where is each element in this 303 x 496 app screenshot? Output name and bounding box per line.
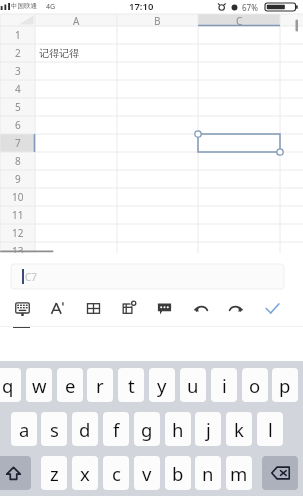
button[interactable]: o — [242, 368, 268, 402]
button[interactable]: Undo — [183, 291, 217, 326]
button[interactable]: t — [118, 368, 144, 402]
button[interactable]: Text format — [40, 291, 74, 326]
staticText: n — [202, 461, 214, 486]
staticText: 8 — [15, 154, 21, 168]
staticText: 中国联通 — [11, 2, 37, 10]
staticText: y — [157, 373, 167, 398]
staticText: m — [230, 461, 248, 486]
button[interactable]: v — [134, 456, 160, 490]
staticText: 17:10 — [129, 0, 154, 13]
button[interactable]: f — [103, 412, 129, 446]
button[interactable]: b — [165, 456, 191, 490]
button[interactable]: e — [57, 368, 83, 402]
button[interactable]: i — [211, 368, 237, 402]
staticText: 1 — [15, 28, 21, 42]
staticText: 2 — [15, 46, 21, 60]
staticText: 13 — [12, 244, 24, 258]
staticText: B — [154, 14, 161, 26]
staticText: c — [112, 461, 121, 486]
staticText: 6 — [15, 118, 21, 132]
staticText: 3 — [15, 64, 21, 78]
button[interactable]: Table — [76, 291, 110, 326]
staticText: C — [236, 14, 243, 26]
button[interactable]: k — [226, 412, 252, 446]
staticText: 12 — [12, 226, 24, 240]
staticText: 9 — [15, 172, 21, 186]
staticText: k — [234, 417, 244, 442]
staticText: s — [50, 417, 59, 442]
staticText: 7 — [15, 136, 21, 150]
staticText: 4 — [15, 82, 21, 96]
button[interactable]: g — [134, 412, 160, 446]
staticText: p — [279, 373, 291, 398]
staticText: o — [249, 373, 261, 398]
button[interactable]: z — [41, 456, 67, 490]
staticText: d — [79, 417, 91, 442]
button[interactable]: Done — [255, 291, 289, 326]
staticText: x — [80, 461, 90, 486]
button[interactable]: l — [257, 412, 283, 446]
staticText: 11 — [12, 208, 24, 222]
staticText: 10 — [12, 190, 24, 204]
button[interactable]: Comment — [147, 291, 181, 326]
button[interactable]: p — [272, 368, 298, 402]
button[interactable]: y — [149, 368, 175, 402]
button[interactable]: j — [195, 412, 221, 446]
button[interactable]: x — [72, 456, 98, 490]
staticText: w — [32, 373, 47, 398]
button[interactable]: Insert cell — [112, 291, 146, 326]
staticText: z — [50, 461, 59, 486]
staticText: r — [96, 373, 104, 398]
button[interactable]: a — [11, 412, 37, 446]
staticText: 记得记得 — [39, 47, 79, 60]
staticText: h — [172, 417, 184, 442]
button[interactable]: s — [41, 412, 67, 446]
staticText: A — [73, 14, 80, 26]
button[interactable]: Keyboard — [5, 291, 39, 326]
button[interactable]: q — [0, 368, 21, 402]
staticText: f — [113, 417, 120, 442]
staticText: t — [128, 373, 135, 398]
staticText: b — [172, 461, 184, 486]
staticText: v — [142, 461, 152, 486]
staticText: l — [268, 417, 273, 442]
staticText: u — [187, 373, 199, 398]
staticText: 67% — [242, 2, 258, 13]
staticText: j — [206, 417, 211, 442]
button[interactable]: u — [180, 368, 206, 402]
staticText: e — [65, 373, 76, 398]
staticText: a — [19, 417, 30, 442]
staticText: 4G — [46, 2, 56, 12]
button[interactable]: w — [26, 368, 52, 402]
button[interactable]: d — [72, 412, 98, 446]
button[interactable]: c — [103, 456, 129, 490]
button[interactable]: C7 — [11, 264, 284, 289]
button[interactable]: n — [195, 456, 221, 490]
button[interactable]: m — [226, 456, 252, 490]
staticText: q — [2, 373, 14, 398]
staticText: g — [141, 417, 153, 442]
button[interactable]: Shift — [0, 456, 31, 490]
button[interactable]: Backspace — [262, 456, 298, 490]
button[interactable]: r — [87, 368, 113, 402]
staticText: 5 — [15, 100, 21, 114]
staticText: i — [222, 373, 227, 398]
staticText: C7 — [25, 270, 38, 284]
button[interactable]: Redo — [219, 291, 253, 326]
button[interactable]: h — [165, 412, 191, 446]
